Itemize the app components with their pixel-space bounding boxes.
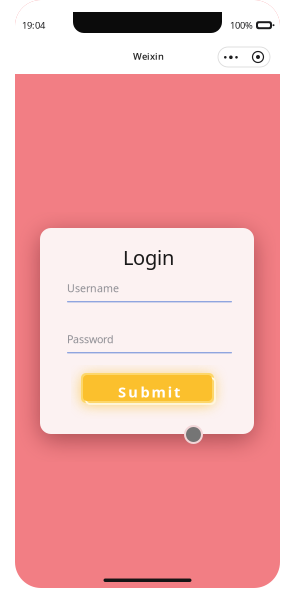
button[interactable]: Submit	[83, 375, 212, 401]
staticText: 100%	[230, 19, 253, 31]
staticText: Password	[67, 332, 114, 346]
staticText: Weixin	[133, 50, 164, 62]
button[interactable]: Close mini program	[246, 47, 270, 67]
staticText: Login	[123, 244, 174, 271]
staticText: Username	[67, 281, 119, 295]
button[interactable]: More	[218, 47, 246, 67]
staticText: 19:04	[22, 19, 45, 31]
staticText: Submit	[118, 382, 217, 401]
